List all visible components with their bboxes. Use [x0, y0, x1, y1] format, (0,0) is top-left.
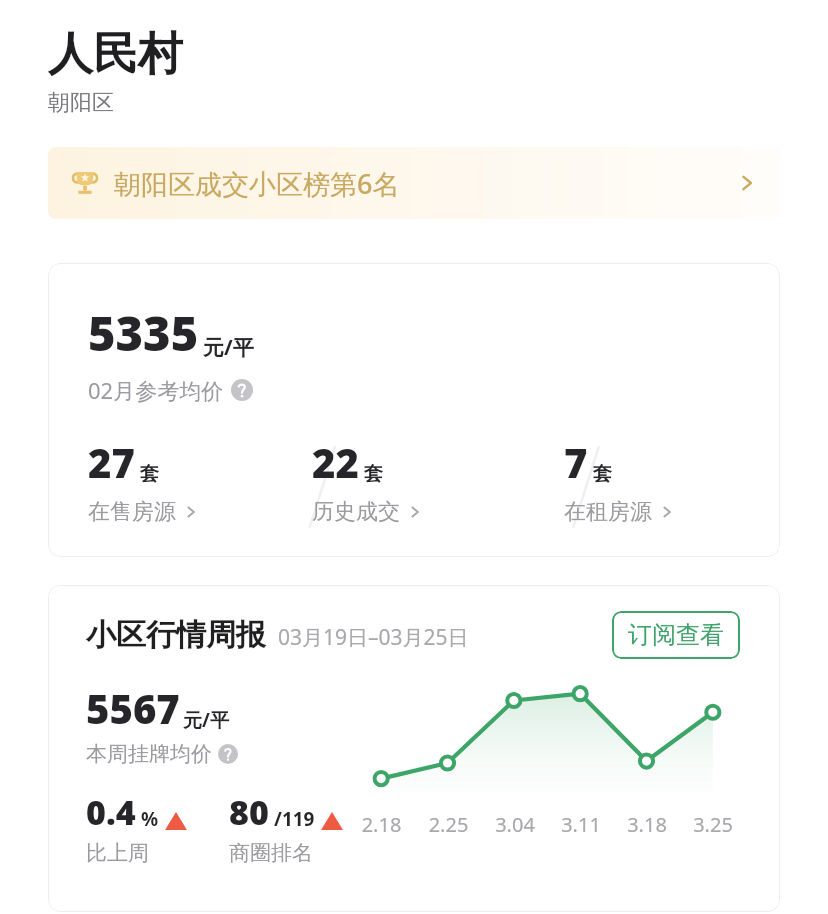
staticText: 03月19日–03月25日	[278, 623, 469, 652]
staticText: 3.25	[680, 811, 746, 838]
staticText: 人民村	[48, 26, 183, 83]
staticText: 小区行情周报	[86, 616, 266, 654]
staticText: 套	[593, 462, 612, 486]
staticText: 历史成交	[312, 498, 400, 526]
button[interactable]: 订阅查看	[612, 611, 740, 659]
staticText: 22	[312, 435, 359, 489]
staticText: 元/平	[203, 333, 254, 362]
staticText: 0.4	[86, 789, 136, 835]
staticText: 5567	[86, 681, 180, 735]
staticText: 商圈排名	[229, 840, 313, 866]
button[interactable]: 22	[312, 435, 536, 526]
staticText: 80	[229, 789, 269, 835]
button[interactable]: 7	[564, 435, 780, 526]
staticText: 元/平	[183, 707, 229, 733]
staticText: 5335	[88, 301, 199, 365]
staticText: 2.18	[348, 811, 415, 838]
staticText: 在售房源	[88, 498, 176, 526]
staticText: 套	[364, 462, 383, 486]
staticText: 7	[564, 435, 588, 489]
staticText: 27	[88, 435, 135, 489]
staticText: 本周挂牌均价	[86, 741, 212, 767]
staticText: 02月参考均价	[88, 375, 224, 405]
staticText: 3.18	[614, 811, 680, 838]
staticText: 3.11	[548, 811, 614, 838]
button[interactable]: 27	[88, 435, 292, 526]
staticText: 2.25	[415, 811, 482, 838]
staticText: %	[141, 806, 159, 832]
button[interactable]: 朝阳区成交小区榜第6名	[48, 147, 780, 219]
staticText: /119	[274, 806, 315, 832]
staticText: 比上周	[86, 840, 149, 866]
staticText: 订阅查看	[628, 620, 724, 650]
staticText: 在租房源	[564, 498, 652, 526]
staticText: 3.04	[482, 811, 548, 838]
staticText: 朝阳区	[48, 89, 114, 117]
staticText: 套	[140, 462, 159, 486]
staticText: 朝阳区成交小区榜第6名	[114, 165, 400, 202]
